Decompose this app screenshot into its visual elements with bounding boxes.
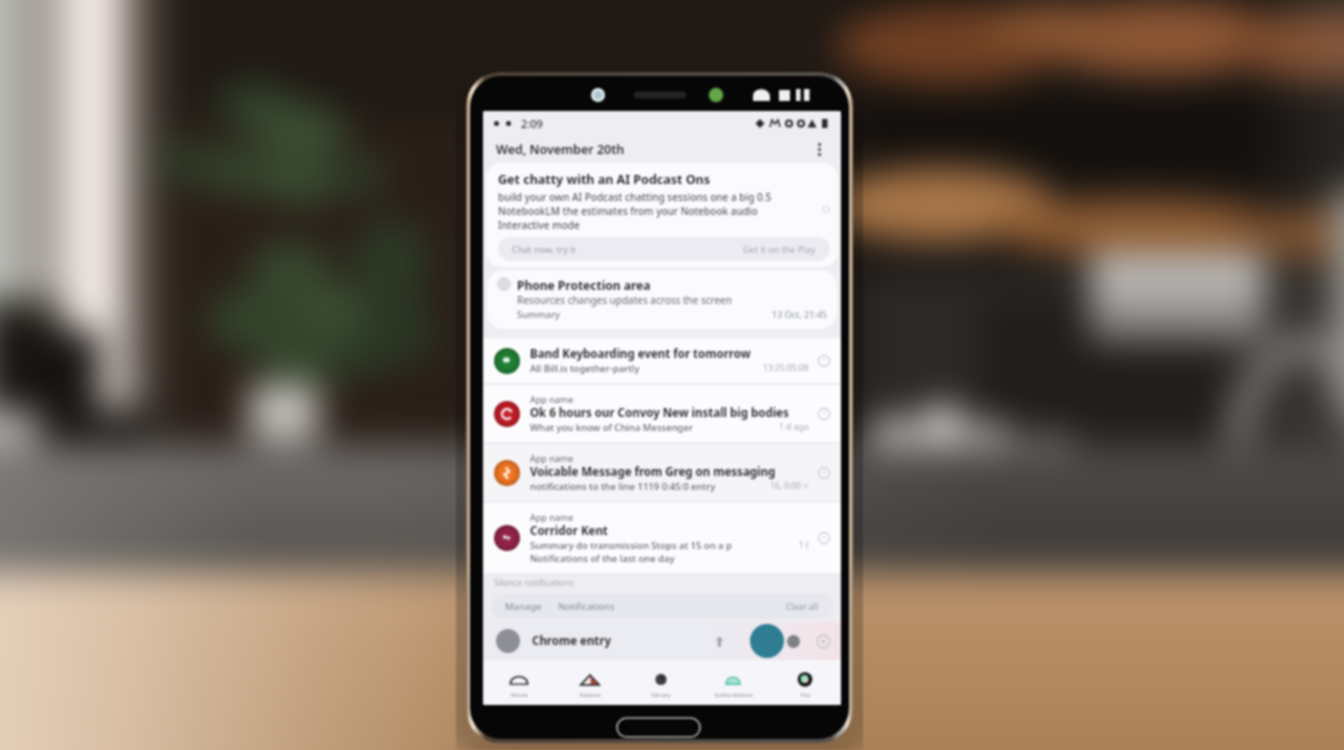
staticText: All Bill.is together-partly [530, 362, 640, 375]
staticText: Library [651, 691, 671, 699]
staticText: Subscriptions [714, 691, 753, 699]
staticText: 1 ( [799, 539, 809, 551]
staticText: Voicable Message from Greg on messaging [530, 464, 776, 480]
button[interactable]: Subscriptions [697, 667, 769, 699]
staticText: 16, 0:00 < [770, 480, 809, 492]
staticText: Ok 6 hours our Convoy New install big bo… [530, 405, 789, 421]
button[interactable]: Library [625, 667, 697, 699]
staticText: NotebookLM the estimates from your Noteb… [498, 204, 758, 218]
staticText: Phone Protection area [517, 277, 651, 293]
button[interactable]: Snooze [817, 466, 831, 480]
staticText: Wed, November 20th [496, 141, 625, 158]
button[interactable]: Snooze [817, 531, 831, 545]
staticText: Band Keyboarding event for tomorrow [530, 346, 751, 362]
staticText: Manage [505, 600, 542, 613]
staticText: Home [510, 691, 528, 699]
button[interactable]: Phone Protection area [487, 270, 837, 329]
button[interactable]: Band Keyboarding event for tomorrow [483, 338, 841, 383]
button[interactable]: Snooze [817, 407, 831, 421]
button[interactable]: Share [713, 635, 726, 648]
staticText: 2:09 [521, 116, 543, 131]
staticText: ○ [822, 204, 830, 214]
staticText: Interactive mode [498, 218, 580, 232]
staticText: Chrome entry [532, 633, 612, 649]
staticText: Corridor Kent [530, 523, 608, 539]
staticText: 13 Oct, 21:45 [772, 308, 827, 320]
button[interactable]: Profile [496, 629, 520, 653]
button[interactable]: Settings [816, 634, 831, 649]
staticText: Get chatty with an AI Podcast Ons [498, 171, 711, 188]
button[interactable]: Explore [554, 667, 625, 699]
staticText: 1 d ago [779, 421, 809, 433]
button[interactable]: App name [483, 385, 841, 442]
staticText: Summary [517, 308, 560, 321]
staticText: notifications to the line 1119 0:45:0 en… [530, 480, 716, 493]
button[interactable]: App name [483, 444, 841, 501]
button[interactable]: App name [483, 503, 841, 573]
staticText: What you know of China Messenger [530, 421, 693, 434]
button[interactable]: Chat now, try it [498, 237, 830, 261]
staticText: Clear all [786, 601, 819, 613]
button[interactable]: Get chatty with an AI Podcast Ons [486, 163, 838, 267]
staticText: App name [530, 511, 574, 523]
staticText: Notifications of the last one day [530, 552, 675, 565]
staticText: Explore [579, 691, 601, 699]
staticText: App name [530, 452, 574, 464]
staticText: Silence notifications [494, 577, 574, 589]
staticText: Chat now, try it [512, 243, 576, 255]
staticText: Get it on the Play [743, 243, 816, 255]
staticText: Summary do transmission Stops at 15 on a… [530, 539, 732, 552]
button[interactable]: Manage [491, 594, 833, 619]
staticText: App name [530, 393, 574, 405]
staticText: Resources changes updates across the scr… [517, 293, 732, 307]
button[interactable]: You [769, 667, 841, 699]
staticText: Notifications [558, 600, 615, 613]
staticText: build your own AI Podcast chatting sessi… [498, 190, 772, 204]
button[interactable]: Snooze [817, 354, 831, 368]
staticText: You [800, 691, 811, 699]
staticText: 13:25:05:08 [763, 362, 809, 374]
button[interactable]: Home [483, 667, 554, 699]
button[interactable]: More options [808, 138, 830, 160]
button[interactable]: Open browser [750, 624, 784, 658]
